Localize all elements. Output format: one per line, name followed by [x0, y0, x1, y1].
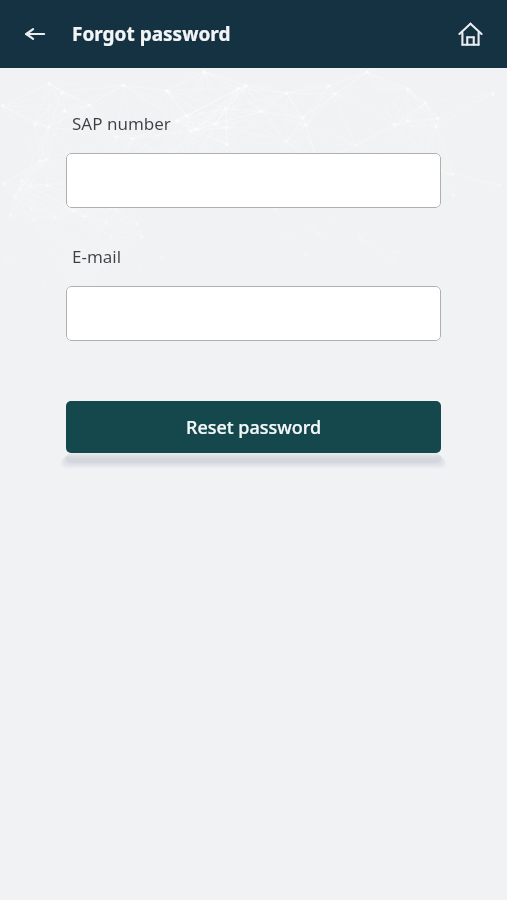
staticText: E-mail — [72, 245, 122, 268]
button[interactable] — [66, 153, 441, 208]
staticText: Reset password — [186, 415, 322, 440]
button[interactable]: Home — [447, 11, 493, 57]
staticText: Forgot password — [72, 21, 231, 47]
button[interactable] — [66, 286, 441, 341]
button[interactable]: Back — [14, 13, 56, 55]
staticText: SAP number — [72, 112, 171, 135]
button[interactable]: Reset password — [66, 401, 441, 453]
